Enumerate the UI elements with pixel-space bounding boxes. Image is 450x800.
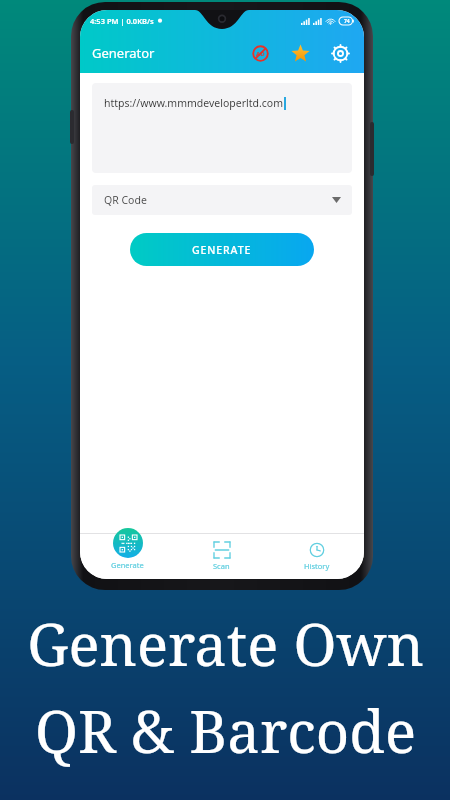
button[interactable]: Rate app	[286, 39, 314, 67]
staticText: QR & Barcode	[35, 691, 416, 770]
staticText: 4:53 PM | 0.0KB/s	[90, 16, 154, 26]
staticText: GENERATE	[192, 243, 252, 257]
staticText: 74	[344, 18, 350, 25]
button[interactable]: Settings	[326, 39, 354, 67]
staticText: Scan	[213, 561, 230, 571]
staticText: https://www.mmmdeveloperltd.com	[104, 96, 283, 110]
staticText: History	[304, 561, 330, 571]
staticText: Generator	[92, 44, 155, 62]
button[interactable]: https://www.mmmdeveloperltd.com	[92, 83, 352, 173]
staticText: Generate	[111, 560, 144, 570]
button[interactable]: History	[269, 533, 364, 579]
button[interactable]: Remove ads	[246, 39, 274, 67]
button[interactable]: QR Code	[92, 185, 352, 215]
button[interactable]: GENERATE	[130, 233, 314, 266]
staticText: QR Code	[104, 193, 147, 207]
staticText: Generate Own	[27, 604, 424, 683]
staticText: AD	[256, 50, 265, 58]
button[interactable]: Generate	[80, 533, 174, 579]
button[interactable]: Scan	[174, 533, 269, 579]
